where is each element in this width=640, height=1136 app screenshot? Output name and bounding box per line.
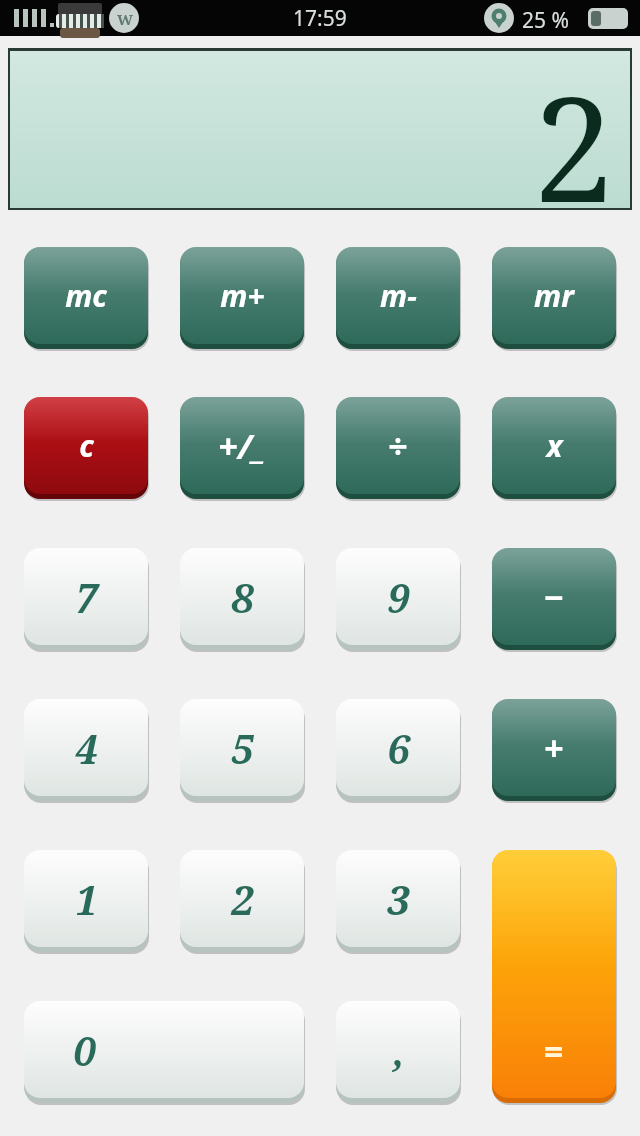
staticText: ÷ <box>388 423 408 469</box>
button[interactable]: = <box>492 850 616 1101</box>
staticText: m− <box>380 275 417 316</box>
staticText: +/_ <box>218 423 266 469</box>
button[interactable]: , <box>336 1001 460 1101</box>
button[interactable]: 1 <box>24 850 148 950</box>
staticText: 1 <box>75 872 98 926</box>
staticText: 5 <box>231 721 254 775</box>
staticText: 2 <box>231 872 254 926</box>
button[interactable]: c <box>24 397 148 497</box>
button[interactable]: m+ <box>180 247 304 347</box>
staticText: m+ <box>220 275 265 316</box>
staticText: , <box>392 1023 405 1077</box>
staticText: − <box>544 574 564 620</box>
staticText: x <box>546 425 563 466</box>
button[interactable]: + <box>492 699 616 799</box>
staticText: + <box>544 725 564 771</box>
staticText: c <box>79 425 94 466</box>
staticText: 2 <box>532 47 614 204</box>
staticText: mc <box>65 275 107 316</box>
staticText: = <box>544 1028 564 1074</box>
button[interactable]: 8 <box>180 548 304 648</box>
button[interactable]: 3 <box>336 850 460 950</box>
staticText: 4 <box>75 721 98 775</box>
staticText: 9 <box>387 570 410 624</box>
staticText: 8 <box>231 570 254 624</box>
button[interactable]: 6 <box>336 699 460 799</box>
button[interactable]: − <box>492 548 616 648</box>
button[interactable]: m− <box>336 247 460 347</box>
staticText: 25 % <box>522 6 569 35</box>
staticText: 0 <box>73 1023 96 1077</box>
button[interactable]: 7 <box>24 548 148 648</box>
button[interactable]: mr <box>492 247 616 347</box>
staticText: 6 <box>387 721 410 775</box>
button[interactable]: 0 <box>24 1001 304 1101</box>
button[interactable]: mc <box>24 247 148 347</box>
staticText: 7 <box>75 570 98 624</box>
staticText: mr <box>534 275 574 316</box>
staticText: 17:59 <box>293 4 347 33</box>
button[interactable]: ÷ <box>336 397 460 497</box>
button[interactable]: 4 <box>24 699 148 799</box>
button[interactable]: 5 <box>180 699 304 799</box>
staticText: W <box>117 9 134 29</box>
button[interactable]: x <box>492 397 616 497</box>
button[interactable]: 9 <box>336 548 460 648</box>
staticText: 3 <box>387 872 410 926</box>
button[interactable]: +/_ <box>180 397 304 497</box>
button[interactable]: 2 <box>180 850 304 950</box>
